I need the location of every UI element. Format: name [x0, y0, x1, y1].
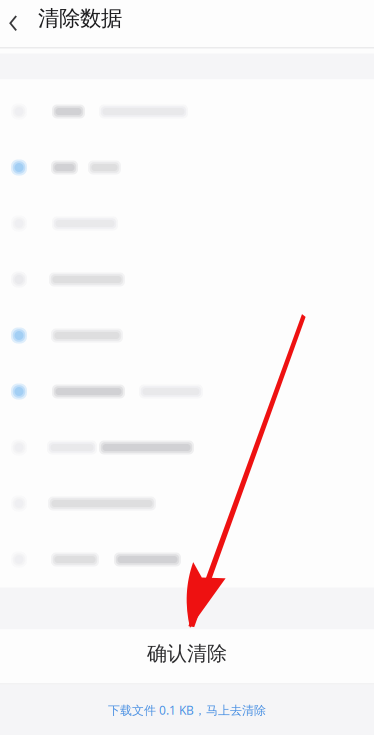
button[interactable]: Back	[0, 0, 38, 47]
button[interactable]: 下载文件 0.1 KB，马上去清除	[0, 684, 374, 735]
staticText: 清除数据	[38, 5, 122, 32]
button[interactable]: 确认清除	[0, 629, 374, 683]
staticText: 下载文件 0.1 KB，马上去清除	[108, 702, 266, 718]
staticText: 确认清除	[147, 641, 227, 666]
